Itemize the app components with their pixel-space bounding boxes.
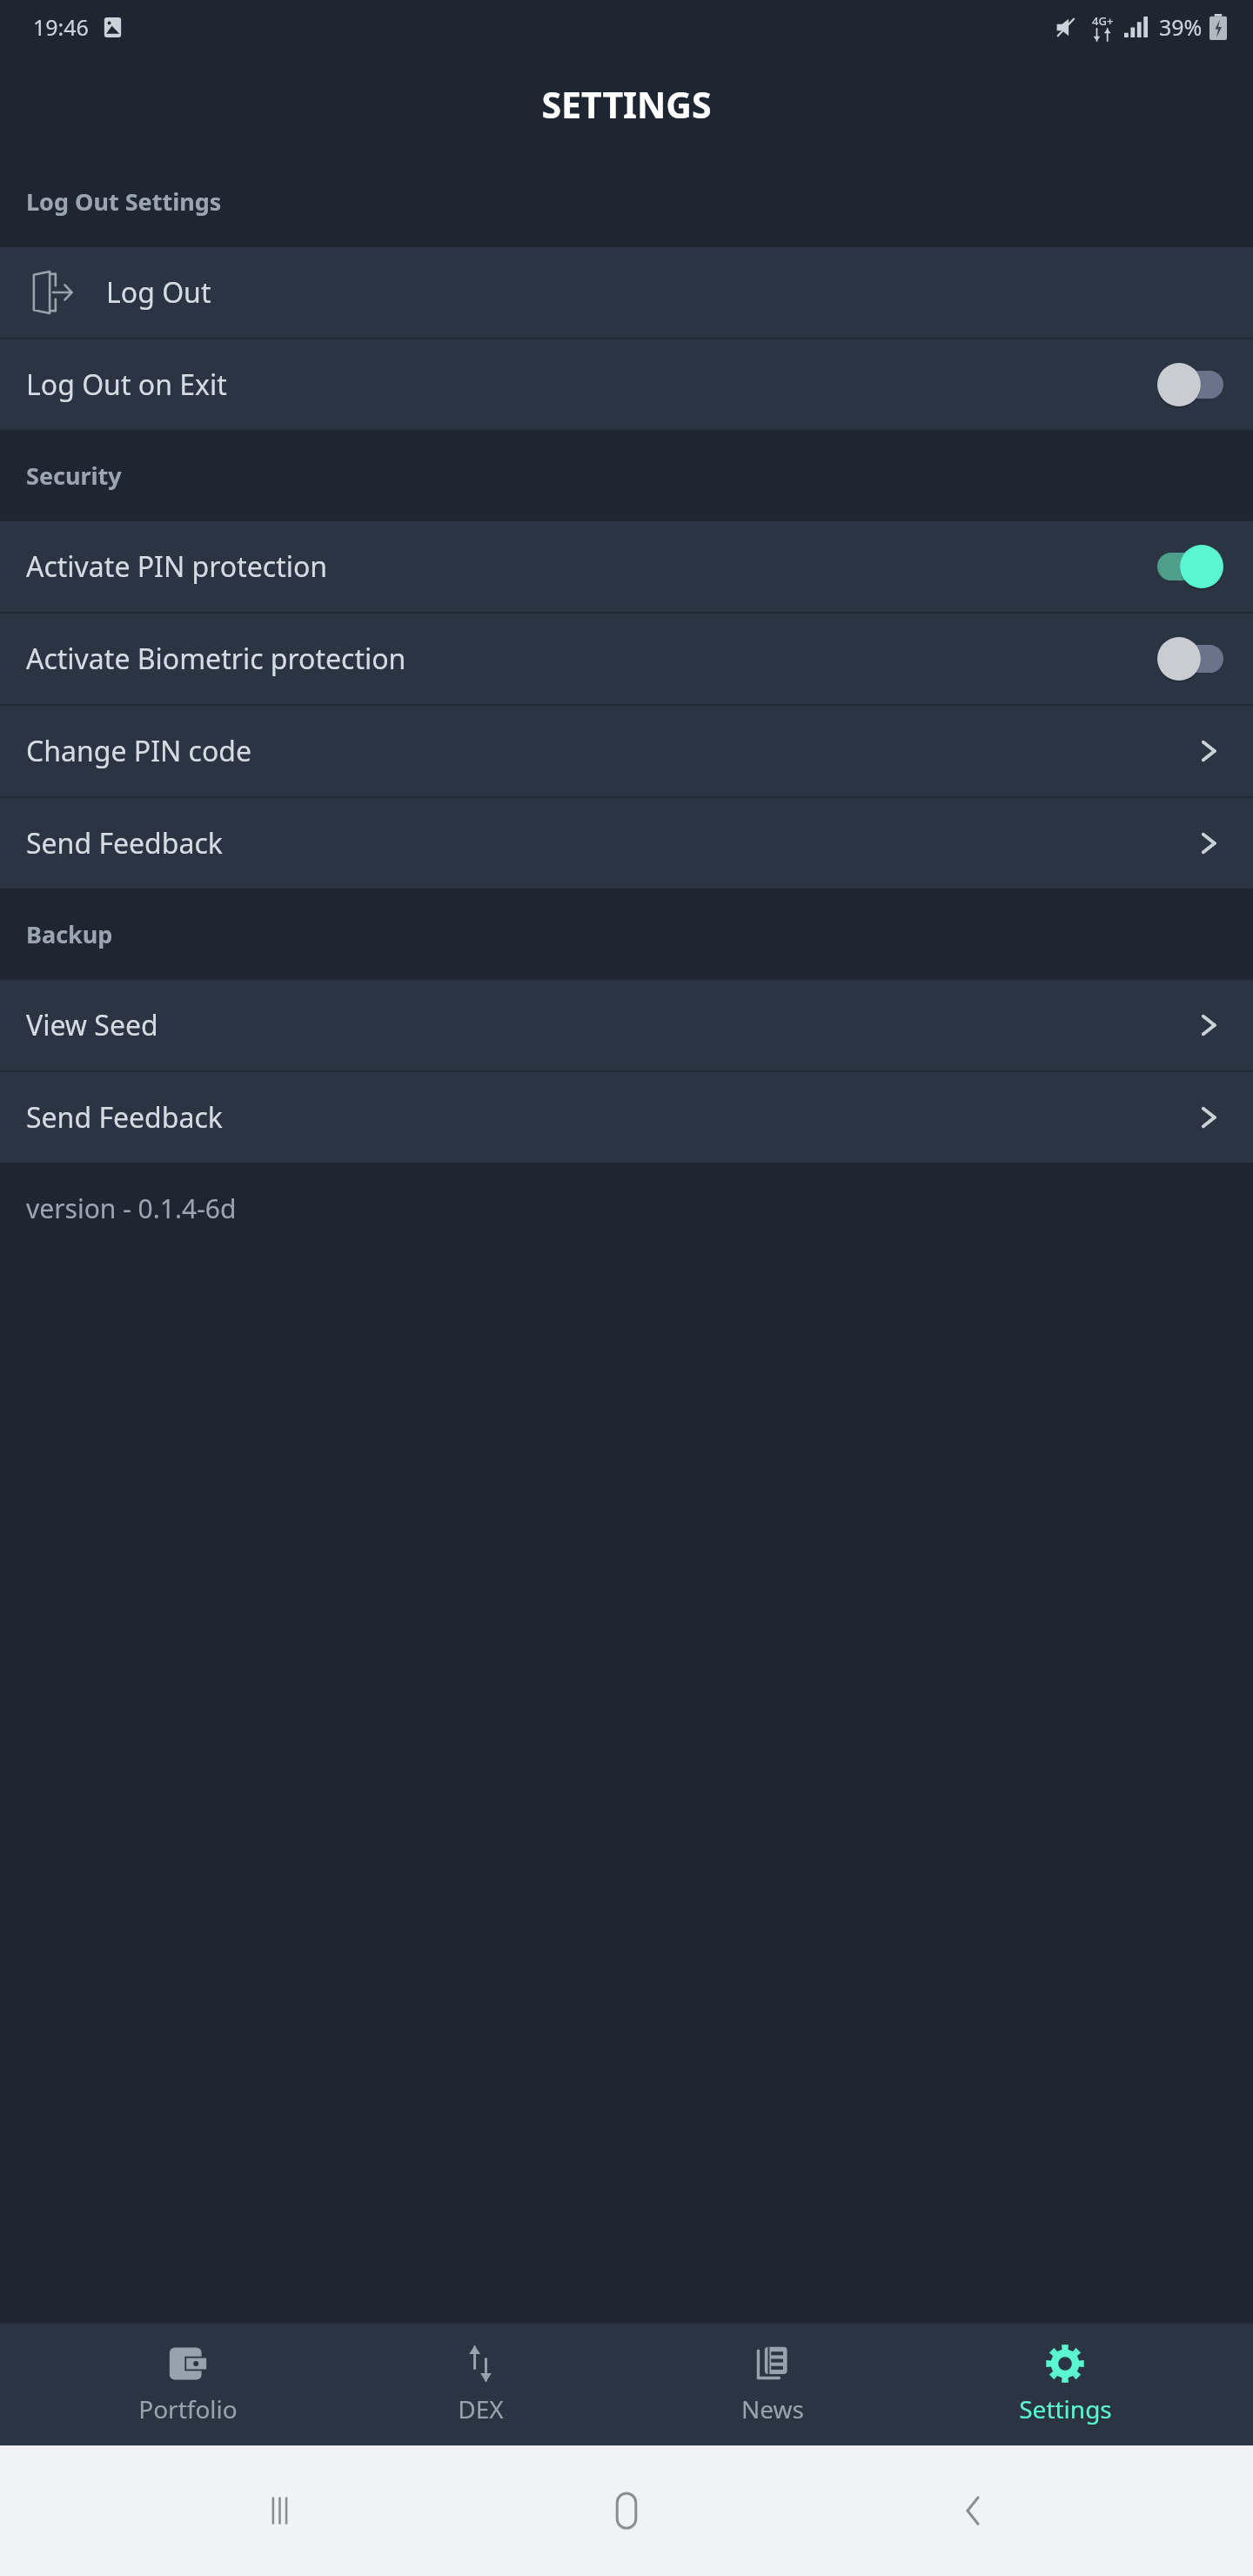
staticText: View Seed bbox=[26, 1006, 1194, 1044]
button[interactable]: Home bbox=[561, 2445, 692, 2576]
staticText: Security bbox=[26, 460, 122, 492]
button[interactable]: Portfolio bbox=[84, 2337, 292, 2432]
staticText: SETTINGS bbox=[541, 80, 712, 129]
button[interactable]: Change PIN code bbox=[0, 706, 1253, 796]
staticText: 19:46 bbox=[33, 12, 89, 42]
button[interactable]: Send Feedback bbox=[0, 1072, 1253, 1163]
staticText: Portfolio bbox=[138, 2392, 238, 2425]
button[interactable]: DEX bbox=[376, 2337, 585, 2432]
staticText: version - 0.1.4-6d bbox=[26, 1191, 237, 1226]
staticText: Activate PIN protection bbox=[26, 547, 1157, 586]
staticText: Send Feedback bbox=[26, 824, 1194, 862]
staticText: News bbox=[741, 2392, 804, 2425]
staticText: Log Out on Exit bbox=[26, 366, 1157, 404]
staticText: Change PIN code bbox=[26, 732, 1194, 770]
staticText: Log Out bbox=[106, 273, 211, 312]
staticText: Backup bbox=[26, 918, 113, 950]
button[interactable]: Log Out on Exit bbox=[0, 339, 1253, 430]
button[interactable]: Recent apps bbox=[216, 2445, 346, 2576]
staticText: 39% bbox=[1159, 12, 1203, 42]
button[interactable]: Back bbox=[908, 2445, 1038, 2576]
staticText: Send Feedback bbox=[26, 1098, 1194, 1137]
staticText: Log Out Settings bbox=[26, 185, 222, 218]
button[interactable]: View Seed bbox=[0, 980, 1253, 1070]
button[interactable]: Log Out bbox=[0, 247, 1253, 338]
button[interactable]: Activate PIN protection bbox=[0, 521, 1253, 612]
button[interactable]: Settings bbox=[961, 2337, 1169, 2432]
button[interactable]: News bbox=[668, 2337, 877, 2432]
staticText: Settings bbox=[1019, 2392, 1112, 2425]
staticText: 4G+ bbox=[1092, 13, 1114, 29]
staticText: Activate Biometric protection bbox=[26, 640, 1157, 678]
button[interactable]: Activate Biometric protection bbox=[0, 614, 1253, 704]
staticText: DEX bbox=[458, 2392, 504, 2425]
button[interactable]: Send Feedback bbox=[0, 798, 1253, 889]
